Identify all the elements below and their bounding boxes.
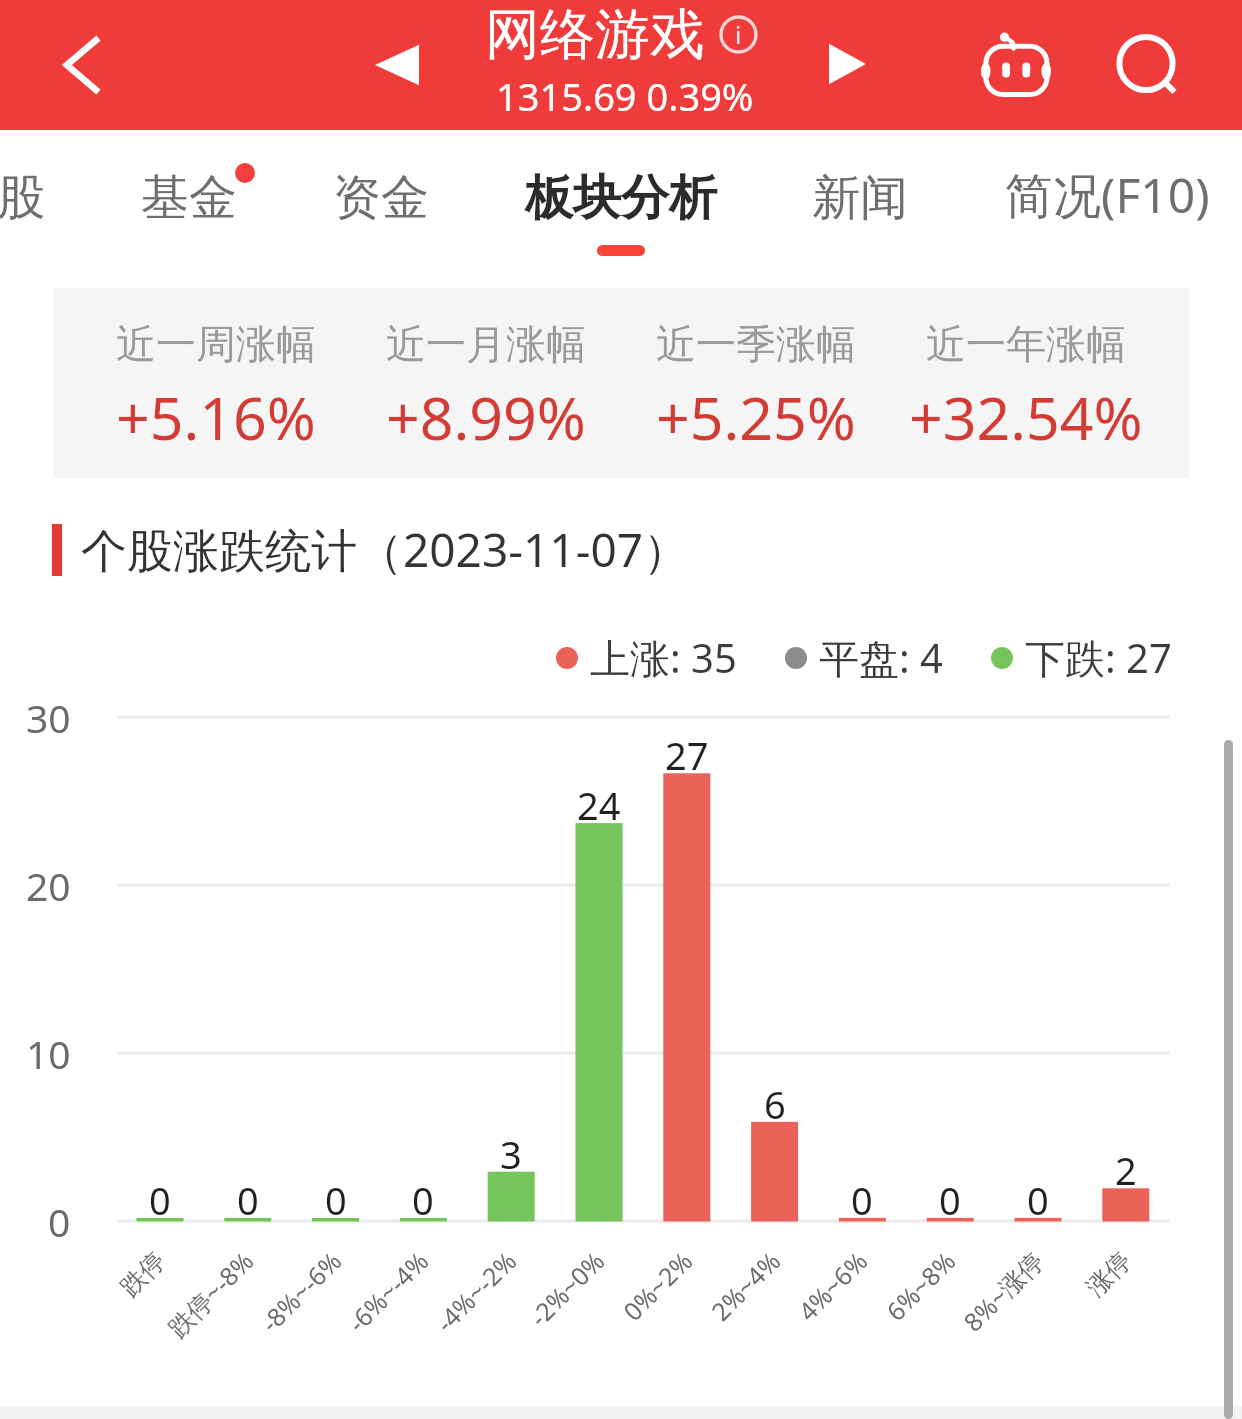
button[interactable]: Search (1101, 19, 1201, 119)
staticText: 27 (665, 729, 709, 777)
button[interactable]: 近一年涨幅 (891, 288, 1161, 478)
button[interactable]: 近一月涨幅 (351, 288, 621, 478)
staticText: 近一季涨幅 (656, 319, 856, 369)
staticText: -8%~-6% (253, 1244, 348, 1339)
button[interactable]: 下跌: 27 (991, 630, 1172, 685)
staticText: 2%~4% (703, 1244, 787, 1328)
staticText: 10 (26, 1027, 71, 1080)
staticText: 0 (48, 1195, 71, 1248)
staticText: 平盘: 4 (819, 630, 943, 685)
staticText: 0 (149, 1174, 171, 1222)
staticText: 下跌: 27 (1025, 630, 1172, 685)
staticText: 资金 (333, 168, 429, 228)
staticText: 基金 (141, 168, 237, 228)
staticText: -6%~-4% (340, 1244, 435, 1339)
staticText: 3 (500, 1128, 522, 1176)
staticText: 4%~6% (790, 1244, 874, 1328)
button[interactable]: Assistant (967, 17, 1067, 117)
staticText: 1315.69 0.39% (496, 70, 754, 122)
staticText: 涨停 (1080, 1245, 1137, 1303)
staticText: 近一年涨幅 (926, 319, 1126, 369)
staticText: 上涨: 35 (590, 630, 737, 685)
staticText: 板块分析 (525, 168, 717, 228)
staticText: 个股涨跌统计（2023-11-07） (81, 518, 690, 581)
button[interactable]: 板块分析 (511, 130, 731, 275)
staticText: 8%~涨停 (955, 1244, 1050, 1339)
button[interactable]: 近一周涨幅 (81, 288, 351, 478)
staticText: +32.54% (909, 377, 1143, 457)
button[interactable]: Next (806, 19, 896, 109)
staticText: 0 (851, 1174, 873, 1222)
staticText: 近一月涨幅 (386, 319, 586, 369)
button[interactable]: 平盘: 4 (785, 630, 943, 685)
staticText: +5.25% (656, 377, 856, 457)
button[interactable]: Back (38, 20, 128, 110)
button[interactable]: 近一季涨幅 (621, 288, 891, 478)
staticText: 0 (325, 1174, 347, 1222)
staticText: 0 (237, 1174, 259, 1222)
button[interactable]: 股 (0, 130, 131, 275)
staticText: 0 (939, 1174, 961, 1222)
staticText: 近一周涨幅 (116, 319, 316, 369)
staticText: 20 (26, 859, 71, 912)
staticText: 6%~8% (878, 1244, 962, 1328)
staticText: +5.16% (116, 377, 316, 457)
staticText: +8.99% (386, 377, 586, 457)
button[interactable]: 新闻 (750, 130, 970, 275)
staticText: 股 (0, 168, 45, 228)
staticText: 跌停 (114, 1245, 171, 1303)
staticText: 24 (577, 779, 621, 827)
staticText: 6 (764, 1078, 786, 1126)
staticText: 0%~2% (615, 1244, 699, 1328)
staticText: 0 (1027, 1174, 1049, 1222)
staticText: 30 (26, 691, 71, 744)
button[interactable]: 简况(F10) (997, 124, 1217, 269)
staticText: 简况(F10) (1005, 162, 1210, 228)
staticText: i (735, 18, 742, 51)
staticText: -4%~-2% (428, 1244, 523, 1339)
button[interactable]: 资金 (271, 130, 491, 275)
button[interactable]: 基金 (79, 130, 299, 275)
staticText: 跌停~-8% (160, 1244, 260, 1344)
staticText: 网络游戏 (485, 0, 705, 69)
button[interactable]: Previous (352, 20, 442, 110)
staticText: 新闻 (812, 168, 908, 228)
staticText: 2 (1115, 1144, 1137, 1192)
staticText: 0 (412, 1174, 434, 1222)
button[interactable]: 上涨: 35 (556, 630, 737, 685)
staticText: -2%~0% (521, 1244, 611, 1334)
